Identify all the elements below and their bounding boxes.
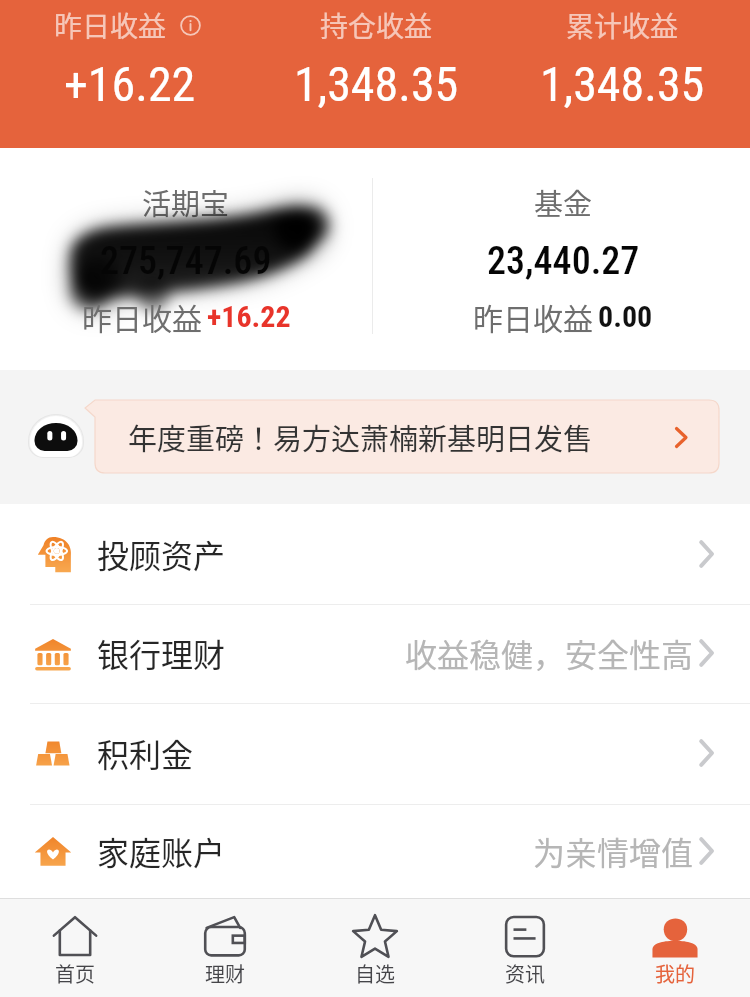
staticText: 收益稳健，安全性高	[405, 630, 694, 676]
staticText: +16.22	[207, 299, 291, 334]
button[interactable]: 家庭账户	[0, 802, 750, 900]
button[interactable]: 银行理财	[0, 604, 750, 702]
other: Info	[180, 15, 201, 36]
staticText: 275,747.69	[100, 239, 272, 284]
staticText: 理财	[205, 959, 245, 988]
staticText: 年度重磅！易方达萧楠新基明日发售	[128, 416, 593, 458]
staticText: 银行理财	[97, 630, 226, 676]
staticText: 投顾资产	[97, 531, 226, 577]
button[interactable]: 投顾资产	[0, 505, 750, 603]
staticText: 累计收益	[566, 5, 679, 46]
button[interactable]: 昨日收益	[2, 0, 252, 148]
button[interactable]: 自选	[300, 899, 450, 997]
button[interactable]: 年度重磅！易方达萧楠新基明日发售	[95, 400, 719, 473]
button[interactable]: 首页	[0, 899, 150, 997]
staticText: 我的	[655, 959, 695, 988]
staticText: 1,348.35	[294, 56, 459, 112]
staticText: 为亲情增值	[533, 828, 694, 874]
staticText: 积利金	[97, 730, 194, 776]
button[interactable]: 持仓收益	[251, 0, 501, 148]
other: Assistant avatar	[28, 410, 84, 464]
staticText: 昨日收益	[82, 295, 202, 338]
staticText: 自选	[355, 959, 395, 988]
staticText: 活期宝	[142, 181, 230, 223]
staticText: +16.22	[64, 56, 196, 112]
staticText: 家庭账户	[97, 828, 226, 874]
staticText: 昨日收益	[473, 295, 593, 338]
button[interactable]: 活期宝	[0, 148, 372, 370]
staticText: 基金	[534, 181, 593, 223]
button[interactable]: 累计收益	[497, 0, 747, 148]
button[interactable]: 基金	[373, 148, 750, 370]
staticText: 昨日收益	[54, 5, 167, 46]
staticText: 资讯	[505, 959, 545, 988]
button[interactable]: 资讯	[450, 899, 600, 997]
staticText: 首页	[55, 959, 95, 988]
button[interactable]: 理财	[150, 899, 300, 997]
staticText: 23,440.27	[487, 239, 640, 284]
staticText: 1,348.35	[540, 56, 705, 112]
button[interactable]: 我的	[600, 899, 750, 997]
staticText: 0.00	[598, 299, 653, 334]
button[interactable]: 积利金	[0, 704, 750, 802]
staticText: 持仓收益	[320, 5, 433, 46]
